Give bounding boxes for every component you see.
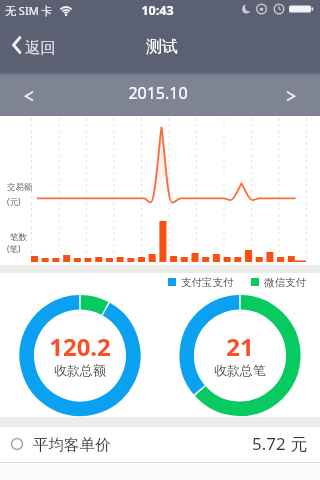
staticText: 10:43 (141, 2, 174, 19)
staticText: 无 SIM 卡 (5, 3, 53, 18)
staticText: 5.72 元 (252, 432, 308, 455)
staticText: 支付宝支付 (181, 276, 234, 289)
staticText: 平均客单价 (33, 435, 111, 455)
staticText: 测试 (146, 37, 178, 57)
staticText: 2015.10 (128, 82, 188, 104)
staticText: (元) (7, 196, 21, 208)
staticText: (笔) (7, 243, 21, 255)
staticText: 收款总笔 (214, 362, 266, 378)
staticText: 120.2 (49, 330, 111, 363)
staticText: 微信支付 (264, 276, 306, 289)
staticText: 交易额 (7, 182, 33, 193)
staticText: 收款总额 (54, 362, 106, 378)
staticText: 笔数 (10, 232, 27, 243)
staticText: 21 (226, 330, 254, 363)
staticText: 返回 (25, 38, 56, 58)
